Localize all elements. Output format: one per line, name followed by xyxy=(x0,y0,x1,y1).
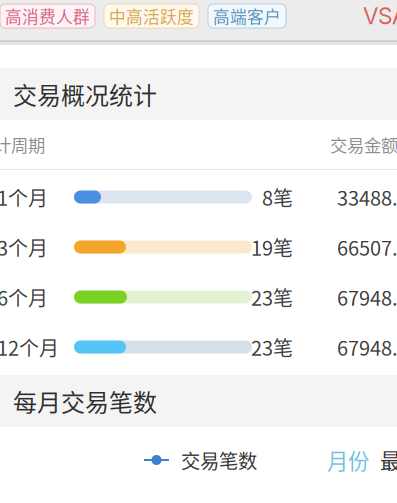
staticText: 高端客户 xyxy=(213,4,281,28)
staticText: 月份 xyxy=(327,445,369,475)
staticText: 中高活跃度 xyxy=(109,4,194,28)
staticText: 23笔 xyxy=(251,282,293,311)
staticText: 统计周期 xyxy=(0,132,45,157)
staticText: 最 xyxy=(380,445,397,475)
staticText: 交易概况统计 xyxy=(13,77,157,111)
staticText: 近3个月 xyxy=(0,232,48,261)
button[interactable]: 高消费人群 xyxy=(0,4,95,28)
staticText: 高消费人群 xyxy=(5,4,90,28)
button[interactable]: 高端客户 xyxy=(208,4,286,28)
staticText: 8笔 xyxy=(262,182,293,211)
staticText: 67948.00 xyxy=(337,282,397,311)
staticText: 交易笔数 xyxy=(181,446,257,474)
button[interactable]: 中高活跃度 xyxy=(104,4,199,28)
staticText: VSA xyxy=(363,2,397,30)
staticText: 每月交易笔数 xyxy=(13,384,157,418)
staticText: 19笔 xyxy=(251,232,293,261)
staticText: 67948.00 xyxy=(337,332,397,361)
staticText: 23笔 xyxy=(251,332,293,361)
staticText: 33488.00 xyxy=(337,182,397,211)
staticText: 近6个月 xyxy=(0,282,48,311)
staticText: 近1个月 xyxy=(0,182,48,211)
staticText: 交易金额(元) xyxy=(330,132,397,157)
staticText: 66507.80 xyxy=(337,232,397,261)
staticText: 近12个月 xyxy=(0,332,59,361)
